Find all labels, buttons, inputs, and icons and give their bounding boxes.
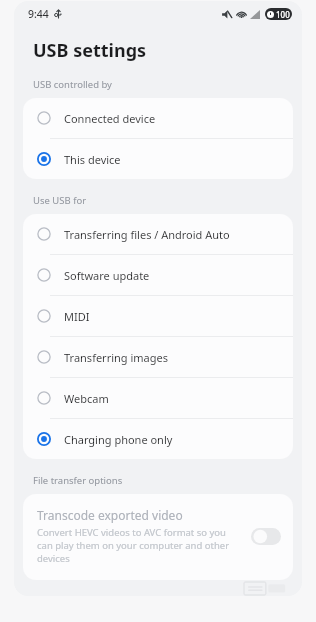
staticText: USB settings xyxy=(33,38,147,63)
button[interactable]: Transcode exported video xyxy=(23,494,293,580)
staticText: 9:44 xyxy=(28,7,49,21)
staticText: Webcam xyxy=(64,391,109,406)
staticText: Software update xyxy=(64,268,150,283)
button[interactable]: Transferring files / Android Auto xyxy=(23,214,293,254)
button[interactable]: Connected device xyxy=(23,98,293,138)
staticText: Transcode exported video xyxy=(37,507,183,523)
staticText: Transferring images xyxy=(64,350,168,365)
staticText: Charging phone only xyxy=(64,432,173,447)
staticText: Convert HEVC videos to AVC format so you… xyxy=(37,526,243,565)
button[interactable]: Charging phone only xyxy=(23,419,293,459)
staticText: Transferring files / Android Auto xyxy=(64,227,230,242)
button[interactable]: Software update xyxy=(23,255,293,295)
button[interactable]: Transcode exported video xyxy=(251,528,281,545)
button[interactable]: This device xyxy=(23,139,293,179)
staticText: 100 xyxy=(276,9,290,20)
staticText: This device xyxy=(64,152,121,167)
staticText: File transfer options xyxy=(33,474,123,487)
button[interactable]: Webcam xyxy=(23,378,293,418)
staticText: MIDI xyxy=(64,309,90,324)
button[interactable]: MIDI xyxy=(23,296,293,336)
staticText: Connected device xyxy=(64,111,156,126)
button[interactable]: Transferring images xyxy=(23,337,293,377)
staticText: Use USB for xyxy=(33,194,87,207)
staticText: USB controlled by xyxy=(33,78,112,91)
